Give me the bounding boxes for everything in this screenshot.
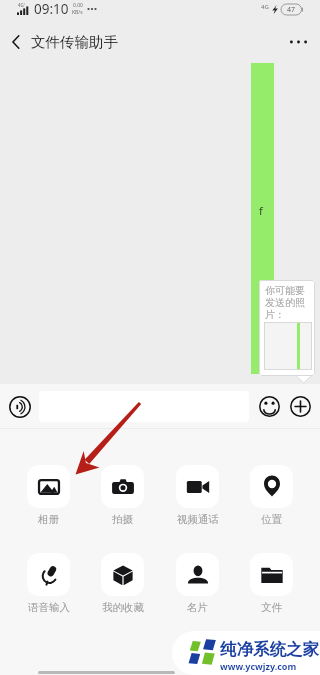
button[interactable]: Voice input: [6, 393, 33, 420]
staticText: 视频通话: [177, 513, 219, 526]
staticText: KB/s: [72, 9, 83, 16]
button[interactable]: [39, 391, 249, 422]
button[interactable]: 我的收藏: [101, 553, 144, 614]
staticText: 09:10: [34, 0, 69, 18]
button[interactable]: 语音输入: [27, 553, 70, 614]
staticText: 相册: [38, 513, 59, 526]
staticText: 你可能要发送的照片：: [265, 284, 309, 321]
staticText: 名片: [187, 601, 208, 614]
staticText: 0.00: [73, 2, 83, 9]
staticText: 文件传输助手: [31, 33, 118, 51]
button[interactable]: 相册: [27, 465, 70, 526]
button[interactable]: Back: [0, 25, 31, 58]
staticText: 文件: [261, 601, 282, 614]
button[interactable]: 视频通话: [176, 465, 219, 526]
staticText: 47: [287, 5, 296, 15]
staticText: 纯净系统之家: [220, 639, 319, 660]
staticText: 位置: [261, 513, 282, 526]
staticText: www.ycwjzy.com: [220, 660, 297, 672]
button[interactable]: 文件: [250, 553, 293, 614]
staticText: 拍摄: [112, 513, 133, 526]
staticText: 我的收藏: [102, 601, 144, 614]
button[interactable]: More options: [276, 25, 320, 58]
button[interactable]: More functions: [287, 393, 314, 420]
staticText: f: [259, 203, 263, 218]
button[interactable]: 位置: [250, 465, 293, 526]
staticText: 4G⁺: [18, 2, 26, 8]
button[interactable]: Emoji: [256, 393, 283, 420]
button[interactable]: 拍摄: [101, 465, 144, 526]
button[interactable]: 名片: [176, 553, 219, 614]
staticText: 语音输入: [28, 601, 70, 614]
staticText: 4G: [261, 3, 269, 11]
